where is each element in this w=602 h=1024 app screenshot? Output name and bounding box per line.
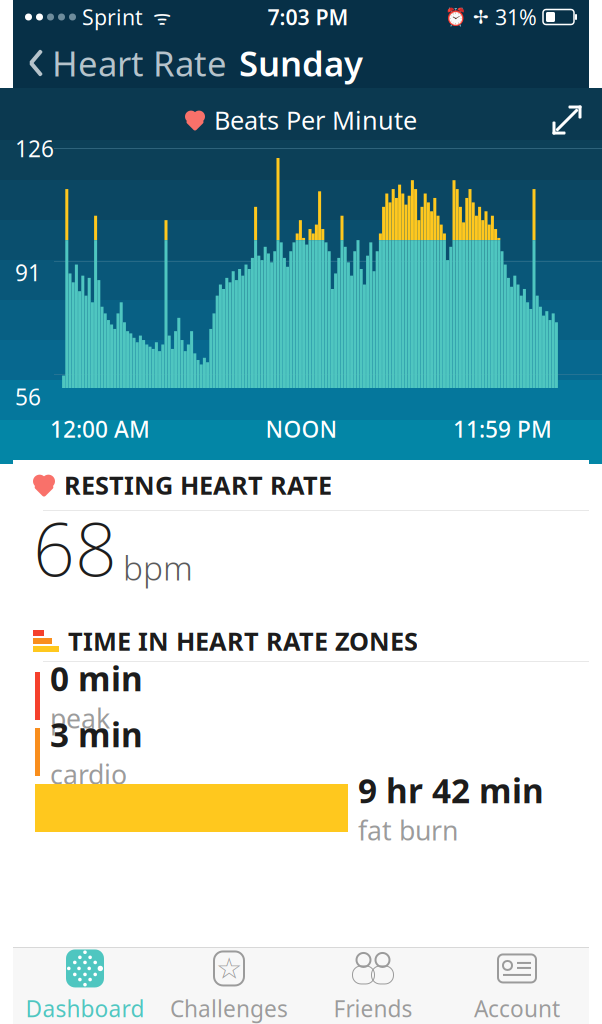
staticText: 91 — [15, 257, 41, 287]
staticText: Sunday — [239, 40, 363, 86]
button[interactable]: Friends — [301, 948, 445, 1024]
staticText: 68 — [33, 499, 117, 597]
staticText: 0 min — [50, 656, 143, 700]
button[interactable]: Dashboard — [13, 948, 157, 1024]
staticText: 9 hr 42 min — [358, 768, 544, 812]
staticText: 7:03 PM — [267, 3, 348, 31]
staticText: ᯤ — [143, 4, 171, 30]
button[interactable]: Heart Rate — [13, 32, 227, 94]
staticText: Friends — [333, 993, 412, 1023]
staticText: ☆ — [216, 952, 242, 985]
staticText: Beats Per Minute — [214, 103, 417, 137]
staticText: ✢ — [473, 6, 489, 28]
staticText: peak — [50, 700, 110, 736]
button[interactable]: Account — [445, 948, 589, 1024]
staticText: RESTING HEART RATE — [64, 468, 332, 502]
staticText: Account — [474, 993, 560, 1023]
staticText: Challenges — [170, 993, 288, 1023]
staticText: 126 — [15, 133, 54, 163]
staticText: cardio — [50, 756, 127, 792]
button[interactable]: Expand chart — [546, 99, 588, 141]
staticText: Heart Rate — [52, 40, 227, 86]
staticText: 12:00 AM — [50, 414, 150, 444]
staticText: NOON — [265, 414, 337, 444]
staticText: 56 — [15, 382, 41, 412]
staticText: 31% — [495, 3, 537, 31]
staticText: ⏰ — [445, 7, 467, 27]
staticText: 3 min — [50, 712, 143, 756]
staticText: TIME IN HEART RATE ZONES — [68, 624, 418, 658]
staticText: fat burn — [358, 812, 458, 848]
staticText: Sprint — [76, 3, 143, 31]
staticText: Dashboard — [25, 993, 144, 1023]
staticText: bpm — [123, 545, 193, 590]
button[interactable]: ☆ — [157, 948, 301, 1024]
staticText: 11:59 PM — [453, 414, 552, 444]
